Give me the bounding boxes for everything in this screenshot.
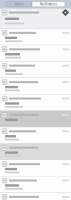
button[interactable]: Notification: [0, 127, 71, 143]
staticText: Inbox: [15, 2, 23, 6]
button[interactable]: Notification: [0, 111, 71, 127]
button[interactable]: Notification: [0, 193, 71, 200]
button[interactable]: Notification: [0, 94, 71, 110]
button[interactable]: Notification: [0, 144, 71, 160]
button[interactable]: Inbox: [6, 2, 32, 7]
button[interactable]: Notification: [0, 176, 71, 192]
button[interactable]: Notification: [0, 45, 71, 61]
button[interactable]: Notification: [0, 160, 71, 176]
button[interactable]: Notification: [0, 62, 71, 78]
button[interactable]: Notification: [0, 29, 71, 45]
button[interactable]: Notification: [0, 8, 71, 28]
staticText: Notifications: [40, 2, 57, 6]
button[interactable]: Notification: [0, 78, 71, 94]
button[interactable]: Notifications: [32, 2, 65, 7]
